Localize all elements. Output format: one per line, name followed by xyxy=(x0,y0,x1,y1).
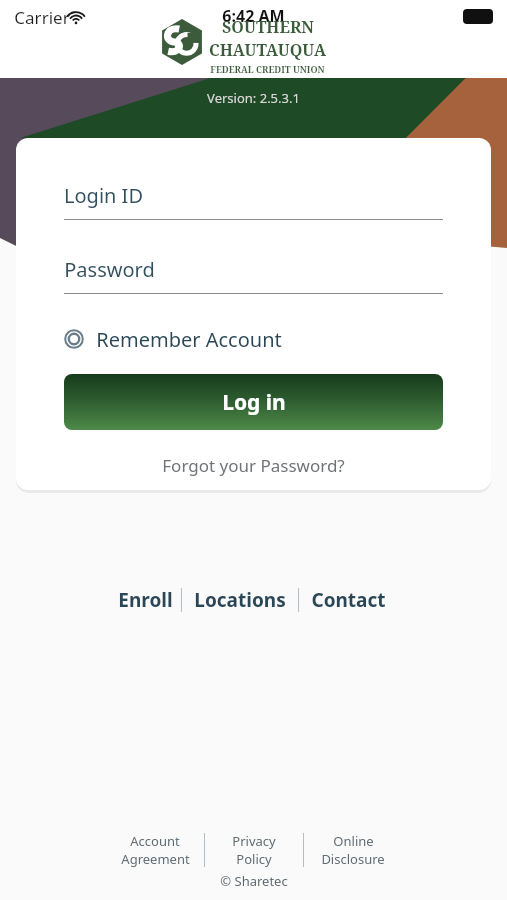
staticText: Privacy xyxy=(232,832,276,850)
button[interactable]: Enroll xyxy=(110,587,181,613)
staticText: Remember Account xyxy=(96,326,282,353)
staticText: Agreement xyxy=(121,850,190,868)
other: Southern Chautauqua logo xyxy=(159,19,205,65)
staticText: SOUTHERN xyxy=(222,16,314,38)
staticText: Forgot your Password? xyxy=(162,454,345,477)
staticText: Contact xyxy=(311,587,386,613)
button[interactable]: Online xyxy=(304,832,402,868)
staticText: Enroll xyxy=(118,587,173,613)
staticText: Policy xyxy=(236,850,272,868)
button[interactable]: Account xyxy=(106,832,204,868)
button[interactable]: Password xyxy=(64,256,443,294)
staticText: Locations xyxy=(194,587,286,613)
button[interactable]: Forgot your Password? xyxy=(64,450,443,480)
staticText: CHAUTAUQUA xyxy=(209,39,326,61)
staticText: 6:42 AM xyxy=(222,5,285,27)
staticText: Carrier xyxy=(14,6,70,29)
staticText: Password xyxy=(64,256,155,283)
staticText: © Sharetec xyxy=(220,872,288,890)
staticText: Online xyxy=(333,832,374,850)
button[interactable]: Login ID xyxy=(64,182,443,220)
button[interactable]: Remember Account xyxy=(64,322,443,356)
staticText: FEDERAL CREDIT UNION xyxy=(210,63,325,75)
button[interactable]: Locations xyxy=(182,587,298,613)
staticText: Account xyxy=(130,832,180,850)
staticText: Login ID xyxy=(64,182,143,209)
staticText: Disclosure xyxy=(321,850,385,868)
button[interactable]: Log in xyxy=(64,374,443,430)
button[interactable]: Privacy xyxy=(205,832,303,868)
button[interactable]: Contact xyxy=(299,587,398,613)
staticText: Version: 2.5.3.1 xyxy=(207,89,300,107)
staticText: Log in xyxy=(222,388,286,417)
